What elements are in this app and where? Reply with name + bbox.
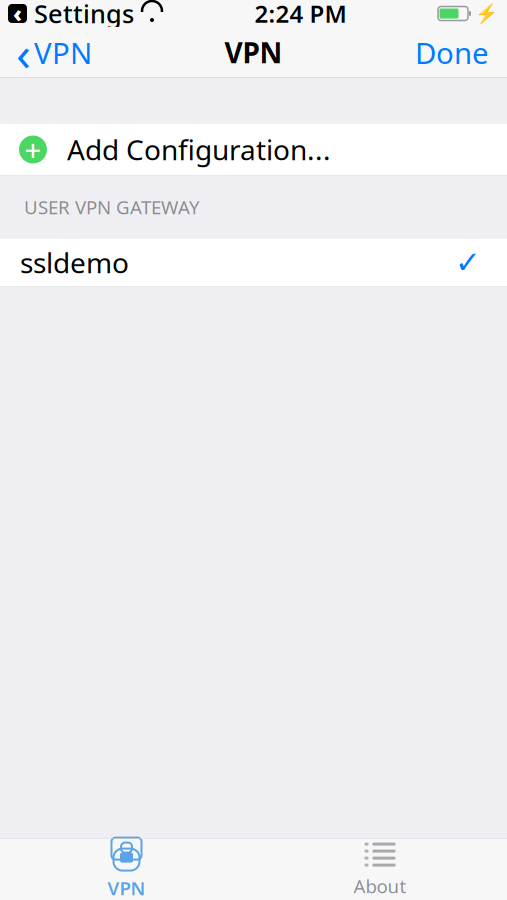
staticText: About bbox=[353, 874, 406, 898]
button[interactable]: ‹ bbox=[0, 15, 92, 90]
staticText: VPN bbox=[107, 876, 145, 900]
button[interactable]: + bbox=[0, 123, 507, 175]
staticText: USER VPN GATEWAY bbox=[24, 195, 200, 219]
staticText: ⚡ bbox=[475, 3, 498, 24]
staticText: ‹ bbox=[13, 0, 22, 28]
button[interactable]: About bbox=[253, 838, 507, 900]
staticText: ‹ bbox=[16, 21, 31, 84]
staticText: 2:24 PM bbox=[254, 0, 346, 29]
button[interactable]: VPN bbox=[0, 838, 253, 900]
staticText: VPN bbox=[224, 34, 282, 71]
button[interactable]: ssldemo bbox=[0, 238, 507, 286]
staticText: ssldemo bbox=[20, 244, 129, 281]
staticText: VPN bbox=[34, 33, 92, 72]
staticText: Done bbox=[415, 33, 489, 72]
staticText: Add Configuration... bbox=[67, 131, 331, 168]
staticText: Settings bbox=[34, 0, 134, 30]
button[interactable]: Done bbox=[415, 27, 507, 78]
staticText: + bbox=[24, 130, 41, 169]
staticText: ✓ bbox=[455, 245, 481, 280]
